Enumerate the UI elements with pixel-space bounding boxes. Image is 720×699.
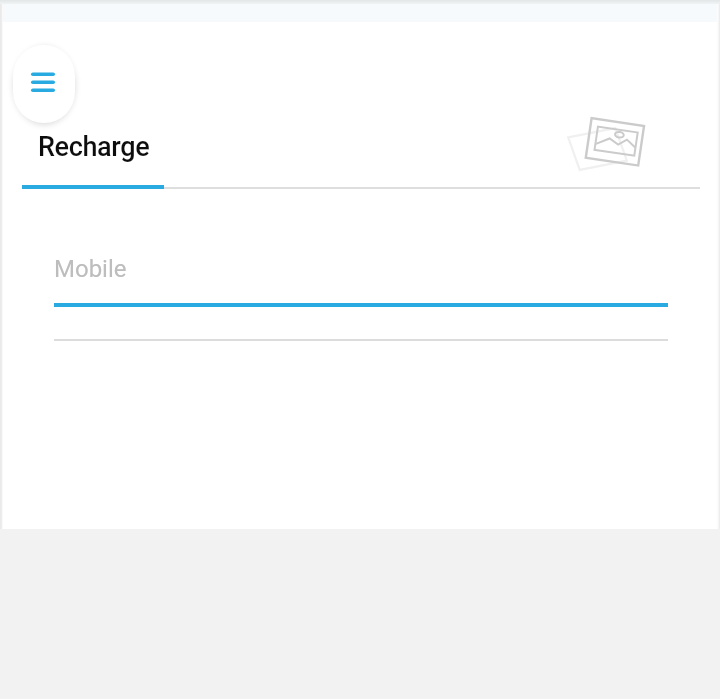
- button[interactable]: Open navigation menu: [13, 45, 75, 123]
- button[interactable]: Recharge: [22, 122, 164, 189]
- button[interactable]: Mobile: [54, 244, 668, 307]
- staticText: Recharge: [38, 131, 150, 163]
- staticText: Mobile: [54, 255, 127, 283]
- button[interactable]: Operator logo: [561, 99, 671, 179]
